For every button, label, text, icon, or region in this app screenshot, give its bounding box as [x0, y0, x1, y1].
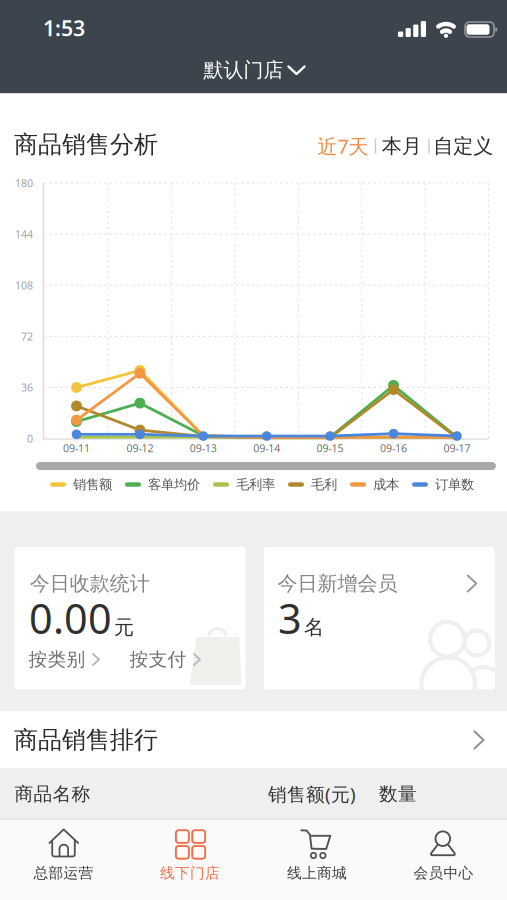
button[interactable]: 总部运营 [0, 819, 126, 900]
staticText: 近7天 [317, 133, 368, 159]
button[interactable]: 线下门店 [127, 819, 253, 900]
staticText: 09-12 [126, 441, 153, 455]
button[interactable]: 商品销售排行 [0, 711, 507, 768]
staticText: 成本 [373, 476, 399, 493]
staticText: 元 [114, 615, 134, 640]
staticText: 09-14 [253, 441, 280, 455]
staticText: 09-11 [63, 441, 90, 455]
staticText: 自定义 [433, 134, 493, 158]
staticText: 按支付 [129, 648, 186, 671]
button[interactable]: 按支付 [129, 643, 201, 675]
staticText: 09-13 [190, 441, 217, 455]
button[interactable]: 近7天 [314, 126, 372, 166]
staticText: 1:53 [43, 14, 85, 42]
staticText: 09-15 [317, 441, 344, 455]
staticText: 09-17 [443, 441, 470, 455]
staticText: 108 [15, 278, 33, 292]
staticText: 线下门店 [160, 864, 220, 882]
staticText: 名 [304, 615, 324, 640]
button[interactable]: 线上商城 [254, 819, 380, 900]
staticText: 总部运营 [33, 864, 93, 882]
staticText: 销售额(元) [268, 782, 356, 806]
staticText: 会员中心 [414, 864, 474, 882]
button[interactable]: 今日新增会员 [264, 547, 495, 689]
staticText: 商品销售排行 [14, 725, 158, 755]
button[interactable]: 会员中心 [381, 819, 507, 900]
button[interactable]: 自定义 [432, 126, 494, 166]
staticText: 本月 [382, 134, 422, 158]
staticText: 今日新增会员 [278, 571, 398, 596]
button[interactable]: 本月 [379, 126, 425, 166]
staticText: 线上商城 [287, 864, 347, 882]
staticText: 36 [21, 380, 33, 395]
staticText: 0 [27, 431, 33, 446]
staticText: 3 [278, 591, 302, 645]
staticText: 180 [15, 176, 33, 190]
staticText: 144 [15, 227, 33, 241]
staticText: 数量 [379, 782, 417, 805]
staticText: 72 [21, 329, 33, 343]
staticText: 商品销售分析 [14, 130, 158, 159]
staticText: 客单均价 [148, 476, 200, 493]
button[interactable]: 按类别 [28, 643, 100, 675]
staticText: 按类别 [28, 648, 85, 671]
button[interactable]: 默认门店 [178, 48, 328, 92]
staticText: 毛利率 [236, 476, 275, 493]
staticText: 今日收款统计 [30, 571, 150, 596]
staticText: 销售额 [73, 476, 112, 493]
staticText: 商品名称 [14, 782, 90, 805]
staticText: 0.00 [29, 591, 112, 645]
staticText: 订单数 [435, 476, 474, 493]
staticText: 毛利 [311, 476, 337, 493]
staticText: 09-16 [380, 441, 407, 455]
staticText: 默认门店 [203, 58, 283, 82]
